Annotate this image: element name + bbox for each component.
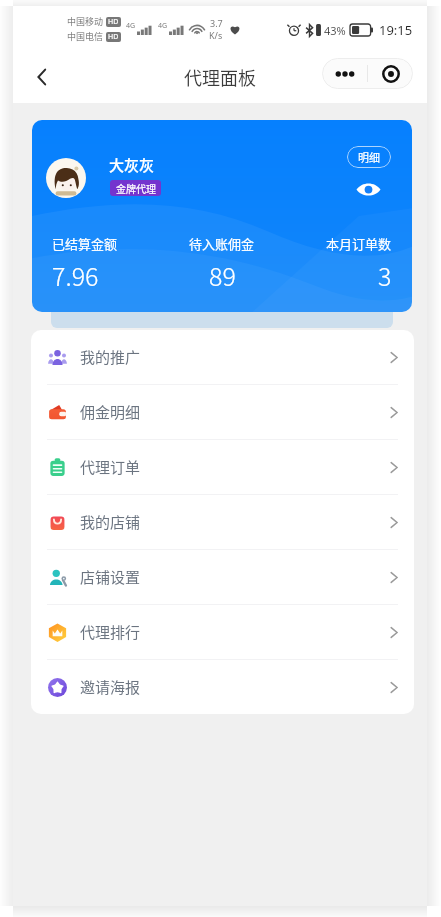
staticText: 89 xyxy=(209,257,236,293)
staticText: K/s xyxy=(209,29,223,41)
staticText: 中国电信 xyxy=(67,30,104,43)
button[interactable]: 明细 xyxy=(347,146,391,168)
staticText: 邀请海报 xyxy=(80,676,141,698)
staticText: 本月订单数 xyxy=(326,234,392,253)
staticText: 3.7 xyxy=(210,17,223,29)
staticText: 代理面板 xyxy=(184,64,256,90)
button[interactable]: More options xyxy=(322,71,367,77)
staticText: HD xyxy=(108,32,119,42)
staticText: 金牌代理 xyxy=(116,181,156,195)
staticText: 3 xyxy=(378,257,392,293)
staticText: 代理订单 xyxy=(80,456,141,478)
staticText: 店铺设置 xyxy=(80,566,141,588)
button[interactable]: 邀请海报 xyxy=(31,660,414,714)
staticText: 代理排行 xyxy=(80,621,141,643)
staticText: 中国移动 xyxy=(67,15,104,28)
button[interactable]: 代理订单 xyxy=(31,440,414,495)
staticText: 我的店铺 xyxy=(80,511,141,533)
staticText: 19:15 xyxy=(379,21,413,39)
button[interactable]: 我的推广 xyxy=(31,330,414,385)
staticText: 4G xyxy=(158,21,168,31)
staticText: 佣金明细 xyxy=(80,401,141,423)
button[interactable]: 我的店铺 xyxy=(31,495,414,550)
button[interactable]: 金牌代理 xyxy=(110,180,161,196)
button[interactable]: Back xyxy=(23,58,61,96)
button[interactable]: 已结算金额 xyxy=(52,234,118,293)
staticText: HD xyxy=(108,17,119,27)
staticText: 待入账佣金 xyxy=(189,234,255,253)
button[interactable]: 代理排行 xyxy=(31,605,414,660)
button[interactable]: 本月订单数 xyxy=(326,234,392,293)
staticText: 大灰灰 xyxy=(109,154,155,176)
button[interactable]: 店铺设置 xyxy=(31,550,414,605)
button[interactable]: 待入账佣金 xyxy=(189,234,255,293)
staticText: 已结算金额 xyxy=(52,234,118,253)
staticText: 43% xyxy=(324,23,346,38)
staticText: 明细 xyxy=(358,149,380,165)
button[interactable]: Toggle amount visibility xyxy=(353,177,383,201)
staticText: 7.96 xyxy=(52,257,99,293)
button[interactable]: 佣金明细 xyxy=(31,385,414,440)
staticText: 4G xyxy=(126,21,136,31)
staticText: 我的推广 xyxy=(80,346,141,368)
button[interactable]: Close mini program xyxy=(368,65,413,83)
